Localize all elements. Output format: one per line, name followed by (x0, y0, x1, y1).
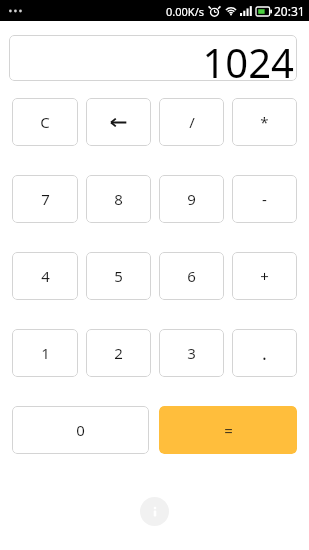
staticText: 1024 (202, 35, 294, 81)
button[interactable]: Info (140, 497, 169, 526)
button[interactable]: Backspace (86, 98, 151, 146)
staticText: / (189, 112, 195, 132)
staticText: 8 (114, 189, 123, 209)
staticText: 3 (187, 343, 196, 363)
button[interactable]: 8 (86, 175, 151, 223)
button[interactable]: * (232, 98, 297, 146)
staticText: * (260, 112, 269, 132)
button[interactable]: 4 (12, 252, 78, 300)
button[interactable]: C (12, 98, 78, 146)
button[interactable]: = (159, 406, 297, 454)
button[interactable]: 2 (86, 329, 151, 377)
button[interactable]: - (232, 175, 297, 223)
button[interactable]: 3 (159, 329, 224, 377)
staticText: 0.00K/s (166, 4, 204, 19)
staticText: 5 (114, 266, 123, 286)
button[interactable]: 9 (159, 175, 224, 223)
staticText: 1 (41, 343, 50, 363)
button[interactable]: + (232, 252, 297, 300)
staticText: 9 (187, 189, 196, 209)
staticText: 7 (41, 189, 50, 209)
staticText: 0 (76, 420, 85, 440)
button[interactable]: 6 (159, 252, 224, 300)
button[interactable]: 1 (12, 329, 78, 377)
button[interactable]: . (232, 329, 297, 377)
staticText: 20:31 (274, 3, 305, 19)
staticText: C (40, 112, 50, 132)
staticText: 2 (114, 343, 123, 363)
staticText: + (260, 266, 269, 286)
staticText: . (262, 341, 267, 366)
staticText: 4 (41, 266, 50, 286)
button[interactable]: 0 (12, 406, 149, 454)
staticText: = (224, 420, 233, 440)
button[interactable]: / (159, 98, 224, 146)
button[interactable]: Display 1024 (9, 35, 297, 81)
button[interactable]: 5 (86, 252, 151, 300)
staticText: 6 (187, 266, 196, 286)
staticText: - (262, 189, 267, 209)
button[interactable]: 7 (12, 175, 78, 223)
